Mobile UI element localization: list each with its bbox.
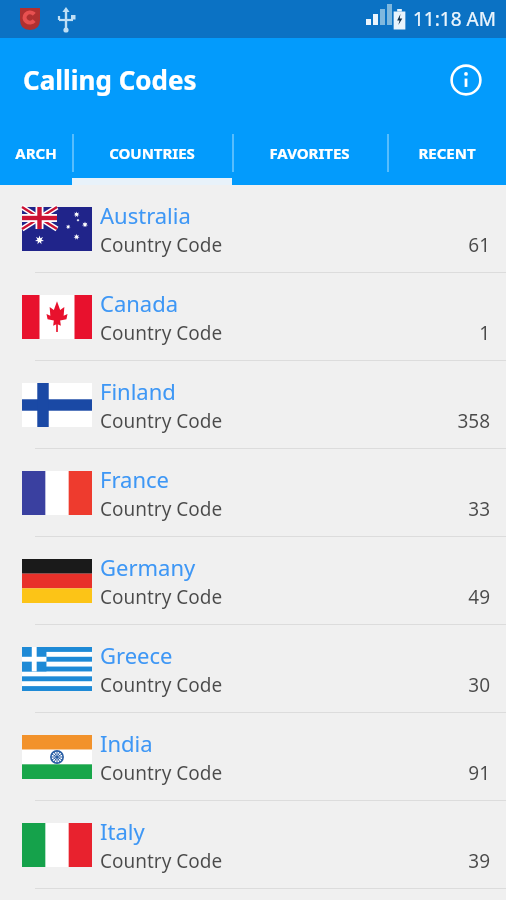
staticText: 33 — [468, 496, 490, 522]
button[interactable]: COUNTRIES — [72, 121, 232, 185]
staticText: 358 — [457, 408, 490, 434]
button[interactable]: Greece — [0, 625, 506, 713]
staticText: RECENT — [418, 143, 476, 163]
staticText: France — [100, 464, 169, 494]
staticText: Finland — [100, 376, 176, 406]
staticText: Country Code — [100, 584, 223, 610]
staticText: Country Code — [100, 408, 223, 434]
staticText: 91 — [468, 760, 490, 786]
staticText: Canada — [100, 288, 179, 318]
button[interactable]: ARCH — [0, 121, 72, 185]
button[interactable]: Finland — [0, 361, 506, 449]
staticText: Country Code — [100, 496, 223, 522]
button[interactable]: India — [0, 713, 506, 801]
staticText: Country Code — [100, 760, 223, 786]
staticText: 39 — [468, 848, 490, 874]
staticText: Country Code — [100, 320, 223, 346]
button[interactable]: FAVORITES — [232, 121, 387, 185]
button[interactable]: Australia — [0, 185, 506, 273]
staticText: Country Code — [100, 232, 223, 258]
staticText: Greece — [100, 640, 173, 670]
staticText: FAVORITES — [269, 143, 350, 163]
staticText: 61 — [468, 232, 490, 258]
staticText: India — [100, 728, 153, 758]
button[interactable]: RECENT — [387, 121, 506, 185]
button[interactable]: Italy — [0, 801, 506, 889]
staticText: Australia — [100, 200, 191, 230]
staticText: 11:18 AM — [413, 6, 496, 32]
staticText: Calling Codes — [23, 62, 197, 97]
button[interactable]: Canada — [0, 273, 506, 361]
staticText: 1 — [479, 320, 490, 346]
button[interactable]: Info — [442, 56, 490, 104]
staticText: Country Code — [100, 848, 223, 874]
button[interactable]: France — [0, 449, 506, 537]
staticText: COUNTRIES — [109, 143, 195, 163]
staticText: ARCH — [15, 143, 57, 163]
button[interactable]: Germany — [0, 537, 506, 625]
staticText: Germany — [100, 552, 196, 582]
staticText: 49 — [468, 584, 490, 610]
staticText: 30 — [468, 672, 490, 698]
staticText: Italy — [100, 816, 145, 846]
staticText: Country Code — [100, 672, 223, 698]
